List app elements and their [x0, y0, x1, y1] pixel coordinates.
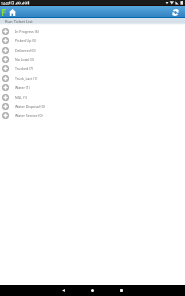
- button[interactable]: Water (1): [0, 83, 185, 92]
- button[interactable]: Water Disposal (0): [0, 102, 185, 111]
- staticText: No Load (3): [15, 57, 34, 62]
- button[interactable]: Water Service (0): [0, 111, 185, 120]
- staticText: Delivered (0): [15, 48, 36, 53]
- staticText: In Progress (6): [15, 29, 39, 34]
- button[interactable]: Home: [78, 285, 107, 296]
- staticText: Truck_Lact (1): [15, 76, 38, 81]
- staticText: Picked Up (5): [15, 38, 37, 43]
- button[interactable]: Trucked (7): [0, 64, 185, 73]
- button[interactable]: NGL (1): [0, 93, 185, 102]
- button[interactable]: Back: [49, 285, 78, 296]
- button[interactable]: Recent apps: [107, 285, 136, 296]
- staticText: Run Ticket List: [5, 19, 33, 25]
- button[interactable]: Refresh: [165, 6, 185, 18]
- button[interactable]: Truck_Lact (1): [0, 74, 185, 83]
- button[interactable]: Home: [8, 6, 17, 18]
- button[interactable]: No Load (3): [0, 55, 185, 64]
- staticText: Water Disposal (0): [15, 104, 45, 109]
- button[interactable]: Picked Up (5): [0, 36, 185, 45]
- staticText: Trucked (7): [15, 66, 34, 71]
- button[interactable]: In Progress (6): [0, 27, 185, 36]
- staticText: NGL (1): [15, 95, 28, 100]
- staticText: Water Service (0): [15, 113, 43, 118]
- staticText: 14:07: [1, 1, 10, 6]
- button[interactable]: Delivered (0): [0, 46, 185, 55]
- staticText: Water (1): [15, 85, 30, 90]
